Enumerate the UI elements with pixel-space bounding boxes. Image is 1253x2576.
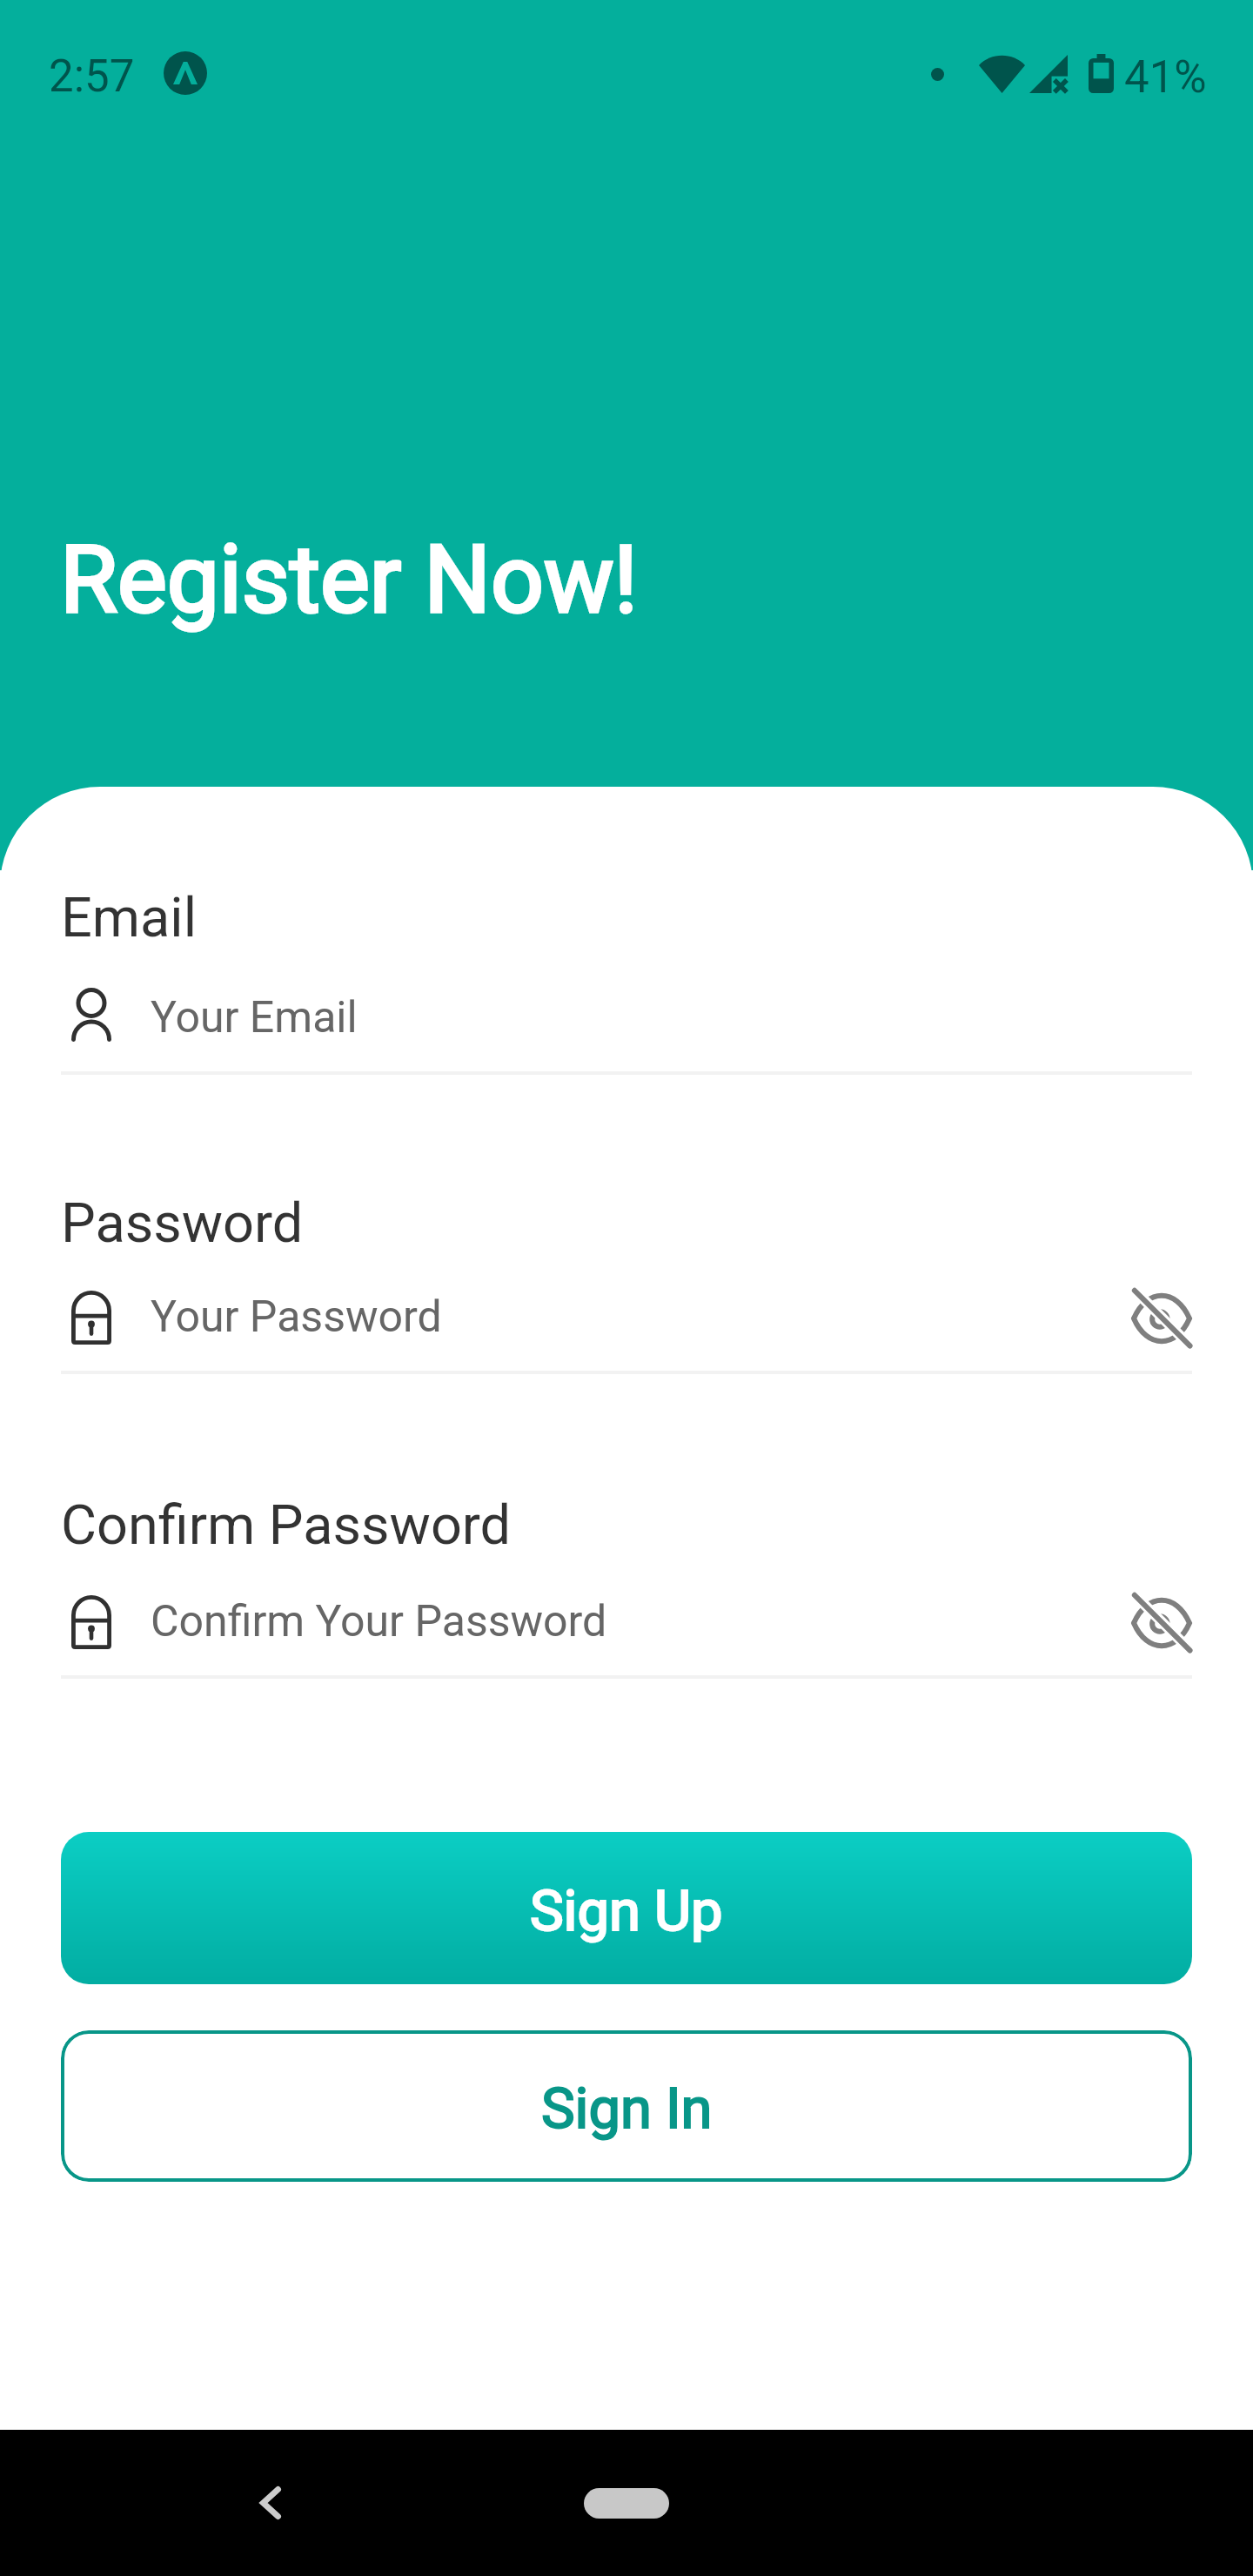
staticText: Confirm Your Password: [151, 1596, 607, 1647]
staticText: Sign In: [541, 2076, 713, 2142]
button[interactable]: Toggle password visibility: [1122, 1279, 1201, 1358]
button[interactable]: Your Email: [61, 966, 1192, 1075]
button[interactable]: Back: [223, 2455, 318, 2551]
button[interactable]: Your Password: [61, 1266, 1192, 1375]
button[interactable]: Confirm Your Password: [61, 1571, 1192, 1680]
staticText: Register Now!: [60, 526, 638, 634]
button[interactable]: Sign In: [61, 2030, 1192, 2182]
button[interactable]: Sign Up: [61, 1832, 1192, 1984]
button[interactable]: Toggle password visibility: [1122, 1584, 1201, 1662]
staticText: Password: [61, 1191, 304, 1256]
button[interactable]: Home: [584, 2488, 669, 2519]
staticText: Your Password: [151, 1291, 442, 1343]
staticText: 41%: [1124, 51, 1207, 104]
staticText: Sign Up: [530, 1878, 723, 1944]
staticText: Email: [61, 886, 197, 950]
staticText: 2:57: [49, 50, 135, 103]
staticText: Confirm Password: [61, 1493, 512, 1558]
staticText: Your Email: [151, 992, 358, 1043]
